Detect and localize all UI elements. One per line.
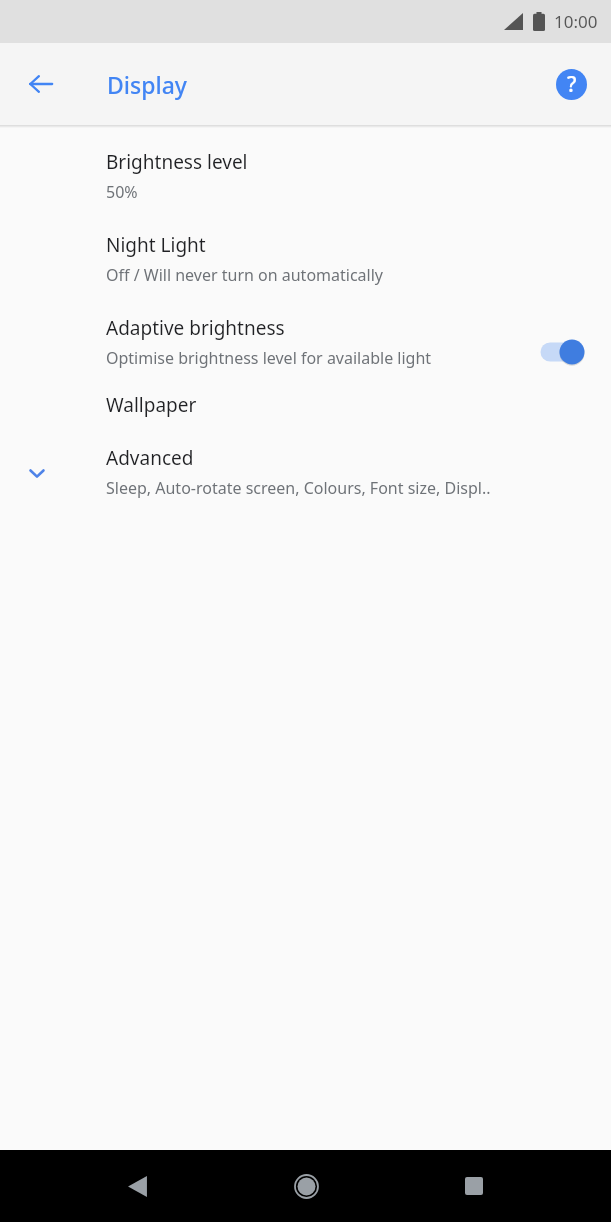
staticText: 10:00 xyxy=(554,10,598,33)
staticText: Sleep, Auto-rotate screen, Colours, Font… xyxy=(106,477,491,499)
button[interactable]: Brightness level xyxy=(0,149,611,203)
staticText: Night Light xyxy=(106,232,206,258)
staticText: Optimise brightness level for available … xyxy=(106,347,432,369)
button[interactable]: Night Light xyxy=(0,232,611,286)
button[interactable]: Adaptive brightness xyxy=(0,315,611,369)
staticText: Advanced xyxy=(106,445,194,471)
staticText: Display xyxy=(107,69,187,100)
staticText: Off / Will never turn on automatically xyxy=(106,264,383,286)
staticText: Wallpaper xyxy=(106,392,197,418)
button[interactable]: Recent apps xyxy=(444,1156,504,1216)
button[interactable]: Back xyxy=(107,1156,167,1216)
button[interactable]: Home xyxy=(276,1156,336,1216)
button[interactable]: Help xyxy=(549,62,593,106)
button[interactable]: Adaptive brightness toggle xyxy=(535,335,589,369)
staticText: ? xyxy=(567,70,577,99)
button[interactable]: Wallpaper xyxy=(0,392,611,418)
button[interactable]: Advanced xyxy=(0,445,611,499)
button[interactable]: Back xyxy=(17,60,65,108)
staticText: 50% xyxy=(106,181,138,203)
staticText: Brightness level xyxy=(106,149,248,175)
staticText: Adaptive brightness xyxy=(106,315,285,341)
